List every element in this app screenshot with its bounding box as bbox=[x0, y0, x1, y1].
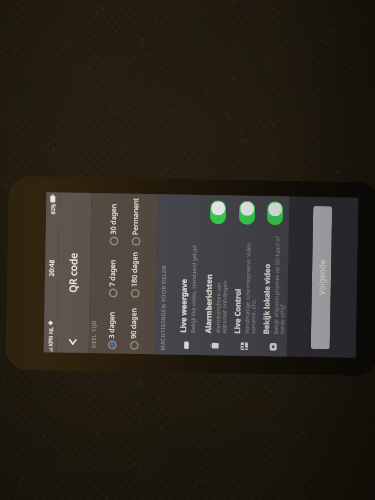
button[interactable]: Back bbox=[63, 332, 83, 352]
button[interactable]: Permanent bbox=[130, 194, 141, 246]
button[interactable]: Bekijk lokale video bbox=[259, 196, 289, 356]
staticText: Alarmberichten bbox=[203, 274, 214, 333]
staticText: Bekijk lokale video bbox=[261, 263, 272, 334]
staticText: Volgende bbox=[316, 259, 327, 295]
button[interactable]: Toggle Alarmberichten bbox=[210, 200, 226, 224]
staticText: Alarmberichten van apparaat ontvangen bbox=[214, 280, 229, 333]
staticText: Bekijk afspeelopnames op SD-kaart of har… bbox=[272, 236, 288, 334]
button[interactable]: 3 dagen bbox=[107, 297, 118, 350]
button[interactable]: 7 dagen bbox=[108, 245, 118, 298]
staticText: KPN NL bbox=[47, 326, 54, 346]
staticText: 20:48 bbox=[47, 259, 56, 276]
button[interactable]: Live Control bbox=[230, 195, 261, 356]
staticText: MACHTIGINGEN VOOR DELEN bbox=[159, 264, 167, 350]
button[interactable]: Toggle Bekijk lokale video bbox=[267, 201, 283, 225]
button[interactable]: Volgende bbox=[311, 206, 332, 349]
staticText: 180 dagen bbox=[130, 252, 140, 287]
staticText: Bekijk live video, standaard geluid bbox=[189, 245, 197, 333]
staticText: DEEL TIJD bbox=[90, 320, 97, 348]
staticText: Handmatige schermopname, video- opname, … bbox=[243, 241, 259, 334]
staticText: 3 dagen bbox=[107, 311, 117, 339]
staticText: Live weergave bbox=[178, 279, 189, 333]
staticText: 7 dagen bbox=[108, 259, 118, 287]
staticText: QR code bbox=[66, 253, 80, 293]
staticText: 30 dagen bbox=[109, 203, 119, 235]
staticText: Permanent bbox=[131, 198, 141, 235]
button[interactable]: Toggle Live Control bbox=[239, 201, 255, 225]
button[interactable]: 90 dagen bbox=[129, 298, 140, 350]
staticText: 82% bbox=[49, 203, 56, 214]
staticText: 90 dagen bbox=[129, 308, 139, 339]
button[interactable]: Alarmberichten bbox=[201, 195, 232, 355]
button[interactable]: 30 dagen bbox=[108, 193, 119, 246]
button[interactable]: 180 dagen bbox=[130, 246, 140, 298]
staticText: Live Control bbox=[232, 289, 243, 334]
button[interactable]: Live weergave bbox=[172, 194, 203, 355]
